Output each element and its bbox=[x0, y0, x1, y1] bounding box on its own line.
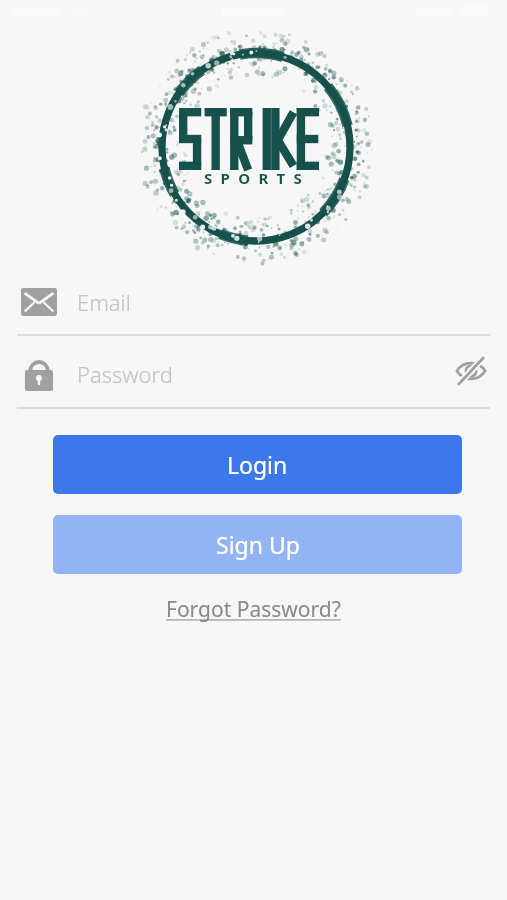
staticText: Email bbox=[77, 287, 131, 317]
staticText: Login bbox=[227, 449, 288, 480]
button[interactable]: Email bbox=[0, 272, 507, 332]
button[interactable]: Password bbox=[0, 345, 507, 403]
button[interactable]: Login bbox=[53, 435, 462, 494]
button[interactable]: Forgot Password? bbox=[160, 592, 347, 627]
staticText: Forgot Password? bbox=[166, 595, 341, 624]
button[interactable]: Show password bbox=[448, 348, 494, 394]
button[interactable]: Sign Up bbox=[53, 515, 462, 574]
staticText: Password bbox=[77, 359, 173, 389]
staticText: S P O R T S bbox=[204, 168, 304, 188]
staticText: Sign Up bbox=[216, 529, 300, 560]
